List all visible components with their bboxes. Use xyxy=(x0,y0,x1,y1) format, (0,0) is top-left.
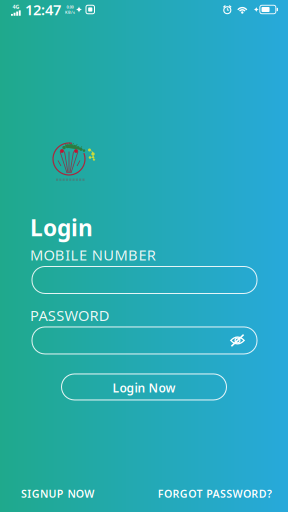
button[interactable]: Show password xyxy=(224,327,251,354)
button[interactable]: SIGNUP NOW xyxy=(21,487,94,500)
staticText: MOBILE NUMBER xyxy=(30,245,156,264)
staticText: SIGNUP NOW xyxy=(21,486,94,501)
button[interactable]: FORGOT PASSWORD? xyxy=(158,487,272,500)
button[interactable]: Login Now xyxy=(61,374,226,400)
staticText: PASSWORD xyxy=(30,305,110,325)
staticText: Login Now xyxy=(112,380,175,396)
staticText: FORGOT PASSWORD? xyxy=(158,486,272,501)
staticText: Login xyxy=(30,212,93,242)
staticText: 12:47 xyxy=(25,0,61,19)
staticText: KB/s xyxy=(65,9,75,15)
staticText: 4G xyxy=(12,3,19,10)
staticText: 0.00 xyxy=(66,4,73,9)
